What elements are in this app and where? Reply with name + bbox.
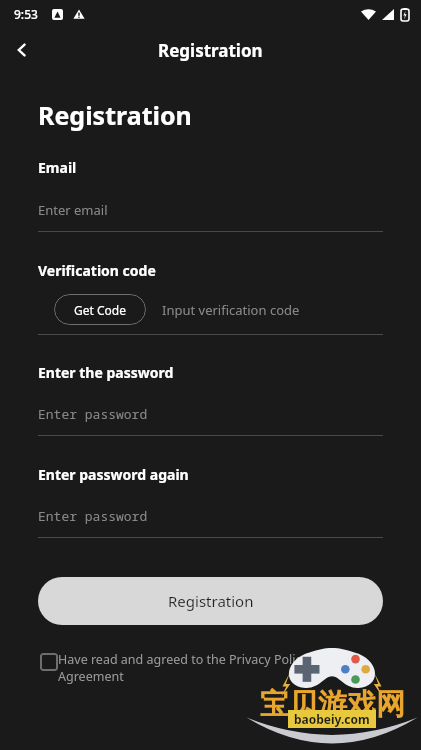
staticText: Enter the password <box>38 363 174 382</box>
staticText: Enter email <box>38 201 108 219</box>
staticText: Verification code <box>38 261 156 280</box>
button[interactable]: Registration <box>38 577 383 625</box>
staticText: 宝贝游戏网 <box>260 686 405 723</box>
staticText: Registration <box>158 39 263 62</box>
staticText: baobeiy.com <box>294 711 370 727</box>
staticText: Input verification code <box>162 301 300 319</box>
staticText: Get Code <box>74 302 126 318</box>
staticText: Enter password again <box>38 465 189 484</box>
staticText: Registration <box>38 98 192 132</box>
button[interactable]: Have read and agreed to the Privacy Poli… <box>58 651 385 685</box>
staticText: Email <box>38 158 77 177</box>
staticText: Enter password <box>38 405 148 423</box>
button[interactable]: Agree to terms <box>40 653 58 671</box>
button[interactable]: Back <box>0 28 44 72</box>
staticText: Registration <box>168 591 254 611</box>
button[interactable]: Get Code <box>54 294 146 325</box>
staticText: 9:53 <box>14 6 38 22</box>
staticText: Enter password <box>38 507 148 525</box>
